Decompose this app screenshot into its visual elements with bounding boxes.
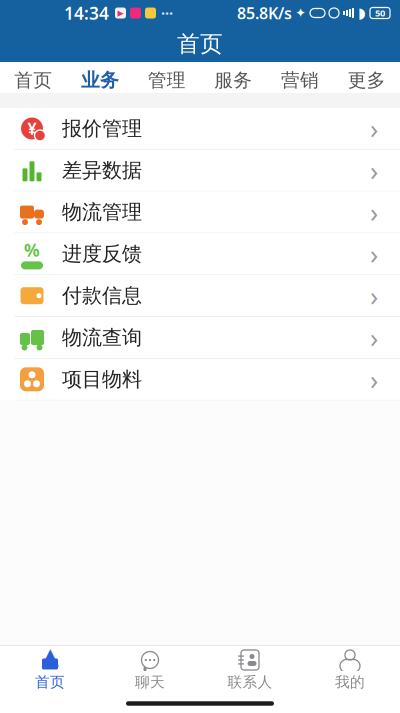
staticText: 报价管理 bbox=[62, 116, 142, 141]
staticText: 我的 bbox=[335, 673, 365, 691]
button[interactable]: 付款信息 bbox=[0, 275, 400, 317]
staticText: 85.8K/s bbox=[237, 2, 292, 24]
button[interactable]: 项目物料 bbox=[0, 359, 400, 401]
button[interactable]: 业务 bbox=[67, 62, 133, 93]
button[interactable]: ▲ bbox=[0, 646, 100, 694]
staticText: 付款信息 bbox=[62, 283, 142, 308]
staticText: ✦ bbox=[295, 5, 306, 20]
button[interactable]: 更多 bbox=[333, 62, 400, 93]
staticText: › bbox=[370, 194, 378, 230]
staticText: ¥ bbox=[27, 118, 36, 139]
button[interactable]: 首页 bbox=[0, 62, 67, 93]
button[interactable]: 管理 bbox=[133, 62, 200, 93]
staticText: 物流查询 bbox=[62, 325, 142, 350]
staticText: › bbox=[370, 153, 378, 188]
staticText: 业务 bbox=[81, 69, 119, 92]
staticText: 项目物料 bbox=[62, 367, 142, 392]
staticText: › bbox=[370, 236, 378, 272]
staticText: 14:34 bbox=[64, 1, 109, 24]
staticText: 首页 bbox=[177, 30, 223, 58]
staticText: 首页 bbox=[14, 69, 52, 92]
button[interactable]: % bbox=[0, 233, 400, 275]
staticText: › bbox=[370, 320, 378, 355]
staticText: % bbox=[24, 238, 40, 261]
button[interactable]: ¥ bbox=[0, 108, 400, 150]
staticText: 更多 bbox=[348, 69, 386, 92]
button[interactable]: 我的 bbox=[300, 646, 400, 694]
staticText: 服务 bbox=[214, 69, 252, 92]
staticText: 物流管理 bbox=[62, 200, 142, 224]
staticText: 首页 bbox=[35, 673, 65, 691]
staticText: 聊天 bbox=[135, 673, 165, 691]
staticText: 管理 bbox=[148, 69, 186, 92]
staticText: 50 bbox=[375, 7, 385, 19]
button[interactable]: 物流查询 bbox=[0, 317, 400, 359]
staticText: › bbox=[370, 278, 378, 313]
staticText: 进度反馈 bbox=[62, 242, 142, 266]
button[interactable]: 聊天 bbox=[100, 646, 200, 694]
staticText: 差异数据 bbox=[62, 158, 142, 183]
staticText: 营销 bbox=[281, 69, 319, 92]
button[interactable]: 物流管理 bbox=[0, 192, 400, 233]
button[interactable]: 服务 bbox=[200, 62, 267, 93]
staticText: ··· bbox=[161, 3, 173, 23]
staticText: › bbox=[370, 111, 378, 146]
staticText: 联系人 bbox=[227, 673, 272, 691]
button[interactable]: 营销 bbox=[267, 62, 333, 93]
staticText: ▶ bbox=[117, 8, 123, 18]
staticText: ▲ bbox=[41, 643, 58, 669]
staticText: › bbox=[370, 362, 378, 397]
button[interactable]: 联系人 bbox=[200, 646, 300, 694]
button[interactable]: 差异数据 bbox=[0, 150, 400, 192]
staticText: ◗ bbox=[358, 5, 366, 21]
